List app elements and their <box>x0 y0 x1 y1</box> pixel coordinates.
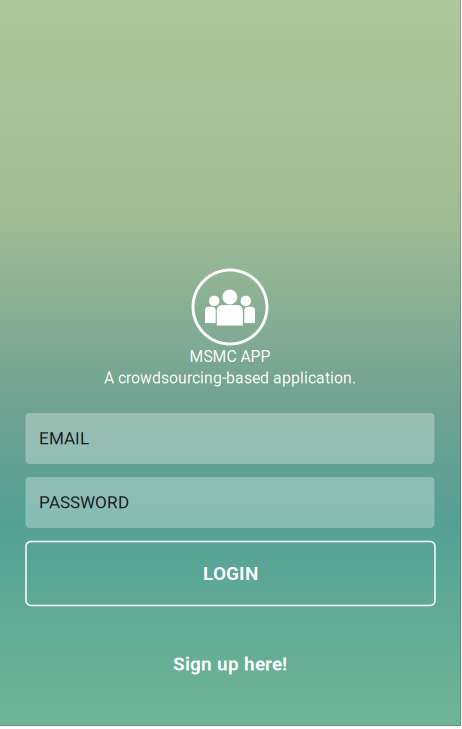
button[interactable]: PASSWORD <box>25 477 434 528</box>
staticText: LOGIN <box>203 562 258 585</box>
button[interactable]: LOGIN <box>26 541 435 605</box>
staticText: PASSWORD <box>39 492 129 512</box>
staticText: A crowdsourcing-based application. <box>104 369 356 387</box>
button[interactable]: EMAIL <box>25 413 434 464</box>
staticText: Sign up here! <box>173 653 287 675</box>
staticText: EMAIL <box>39 428 89 448</box>
staticText: MSMC APP <box>189 347 270 366</box>
button[interactable]: Sign up here! <box>0 647 460 681</box>
